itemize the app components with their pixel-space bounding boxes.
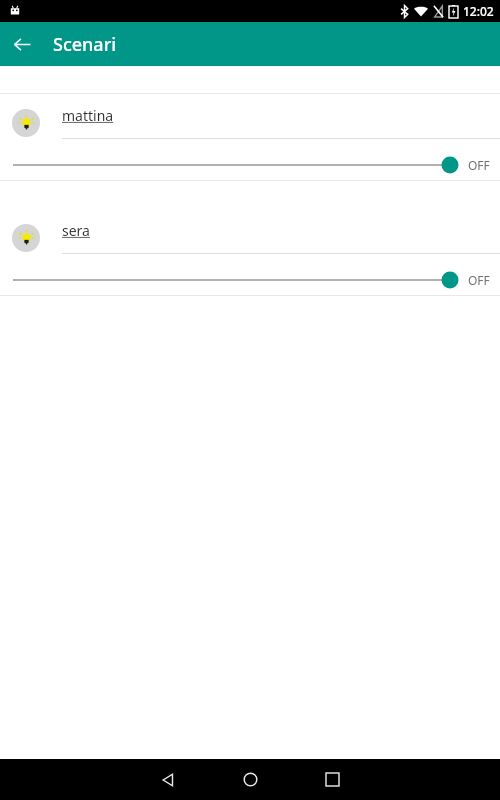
- button[interactable]: sera: [0, 209, 500, 295]
- button[interactable]: Home: [222, 759, 278, 800]
- button[interactable]: Back: [140, 759, 196, 800]
- staticText: OFF: [468, 157, 490, 173]
- staticText: mattina: [62, 106, 114, 125]
- button[interactable]: Back: [4, 26, 40, 62]
- staticText: sera: [62, 221, 90, 240]
- staticText: OFF: [468, 272, 490, 288]
- staticText: 12:02: [463, 3, 494, 19]
- button[interactable]: Recents: [304, 759, 360, 800]
- staticText: Scenari: [53, 32, 117, 57]
- button[interactable]: mattina: [0, 94, 500, 180]
